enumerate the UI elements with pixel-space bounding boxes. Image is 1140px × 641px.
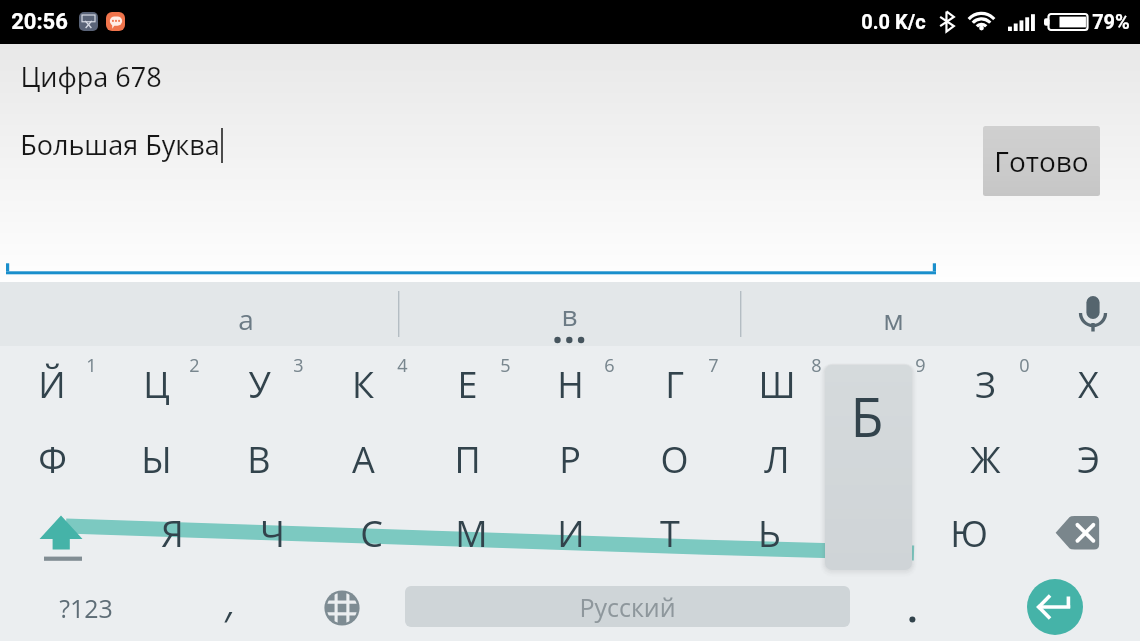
- staticText: м: [883, 300, 904, 338]
- button[interactable]: С: [322, 496, 421, 570]
- button[interactable]: Э: [1036, 422, 1140, 496]
- button[interactable]: И: [521, 496, 620, 570]
- button[interactable]: Enter: [1027, 579, 1083, 635]
- staticText: 0: [1019, 353, 1030, 378]
- staticText: А: [352, 435, 375, 484]
- staticText: М: [455, 509, 488, 558]
- staticText: Ц: [143, 360, 170, 409]
- staticText: Г: [665, 360, 684, 409]
- staticText: О: [660, 435, 689, 484]
- staticText: Б: [850, 379, 884, 453]
- button[interactable]: Ы: [104, 422, 208, 496]
- button[interactable]: Change keyboard language: [296, 574, 388, 641]
- staticText: И: [557, 509, 585, 558]
- staticText: Щ: [862, 360, 900, 409]
- staticText: Ч: [260, 509, 285, 558]
- button[interactable]: Д: [829, 422, 933, 496]
- staticText: Н: [557, 360, 584, 409]
- staticText: К: [352, 360, 374, 409]
- staticText: У: [248, 360, 271, 409]
- button[interactable]: А: [311, 422, 415, 496]
- button[interactable]: м: [740, 282, 1046, 346]
- button[interactable]: Ц: [104, 347, 208, 421]
- staticText: З: [975, 360, 996, 409]
- button[interactable]: Русский: [405, 586, 850, 627]
- staticText: 79%: [1092, 10, 1130, 33]
- button[interactable]: М: [422, 496, 521, 570]
- staticText: П: [454, 435, 481, 484]
- button[interactable]: Ь: [720, 496, 819, 570]
- staticText: ?123: [59, 591, 113, 625]
- staticText: В: [247, 435, 271, 484]
- staticText: 8: [811, 353, 822, 378]
- button[interactable]: П: [415, 422, 519, 496]
- button[interactable]: Ф: [0, 422, 104, 496]
- staticText: 20:56: [11, 9, 68, 35]
- staticText: Ж: [970, 435, 1001, 484]
- staticText: Й: [38, 360, 66, 409]
- staticText: Д: [869, 435, 894, 484]
- staticText: Э: [1077, 435, 1100, 484]
- staticText: в: [561, 296, 578, 334]
- staticText: Русский: [579, 590, 676, 624]
- button[interactable]: ?123: [34, 574, 138, 641]
- staticText: 9: [915, 353, 926, 378]
- staticText: Л: [764, 435, 790, 484]
- staticText: Большая Буква: [20, 126, 220, 163]
- button[interactable]: Ч: [223, 496, 322, 570]
- staticText: 7: [708, 353, 719, 378]
- staticText: Ш: [758, 360, 796, 409]
- staticText: 1: [86, 353, 97, 378]
- button[interactable]: З: [933, 347, 1037, 421]
- button[interactable]: Щ: [829, 347, 933, 421]
- staticText: Цифра 678: [20, 58, 162, 95]
- staticText: Х: [1078, 360, 1099, 409]
- button[interactable]: Backspace: [1036, 496, 1140, 570]
- button[interactable]: Voice input: [1046, 282, 1140, 346]
- staticText: Я: [161, 509, 184, 558]
- button[interactable]: [870, 574, 960, 641]
- staticText: 5: [500, 353, 511, 378]
- button[interactable]: У: [207, 347, 311, 421]
- button[interactable]: Р: [518, 422, 622, 496]
- staticText: 0.0 K/c: [861, 10, 926, 33]
- staticText: а: [238, 300, 254, 338]
- staticText: Р: [559, 435, 581, 484]
- button[interactable]: Л: [725, 422, 829, 496]
- button[interactable]: Й: [0, 347, 104, 421]
- button[interactable]: Shift: [0, 496, 104, 570]
- button[interactable]: В: [207, 422, 311, 496]
- staticText: Ы: [141, 435, 172, 484]
- button[interactable]: Г: [622, 347, 726, 421]
- button[interactable]: Ж: [933, 422, 1037, 496]
- staticText: С: [360, 509, 383, 558]
- button[interactable]: О: [622, 422, 726, 496]
- button[interactable]: Н: [518, 347, 622, 421]
- button[interactable]: [180, 574, 274, 641]
- staticText: Ю: [950, 509, 988, 558]
- staticText: Готово: [994, 142, 1089, 180]
- staticText: 2: [189, 353, 200, 378]
- button[interactable]: Т: [620, 496, 719, 570]
- button[interactable]: в: [398, 282, 740, 346]
- staticText: Е: [457, 360, 478, 409]
- button[interactable]: Е: [415, 347, 519, 421]
- button[interactable]: Я: [123, 496, 222, 570]
- button[interactable]: К: [311, 347, 415, 421]
- staticText: 6: [604, 353, 615, 378]
- button[interactable]: Б: [819, 496, 918, 570]
- staticText: 4: [397, 353, 408, 378]
- button[interactable]: Готово: [983, 126, 1100, 196]
- button[interactable]: Ю: [919, 496, 1018, 570]
- button[interactable]: Ш: [725, 347, 829, 421]
- staticText: Ь: [758, 509, 781, 558]
- button[interactable]: Х: [1036, 347, 1140, 421]
- staticText: 3: [293, 353, 304, 378]
- staticText: Ф: [38, 435, 67, 484]
- button[interactable]: а: [0, 282, 398, 346]
- staticText: Т: [660, 509, 680, 558]
